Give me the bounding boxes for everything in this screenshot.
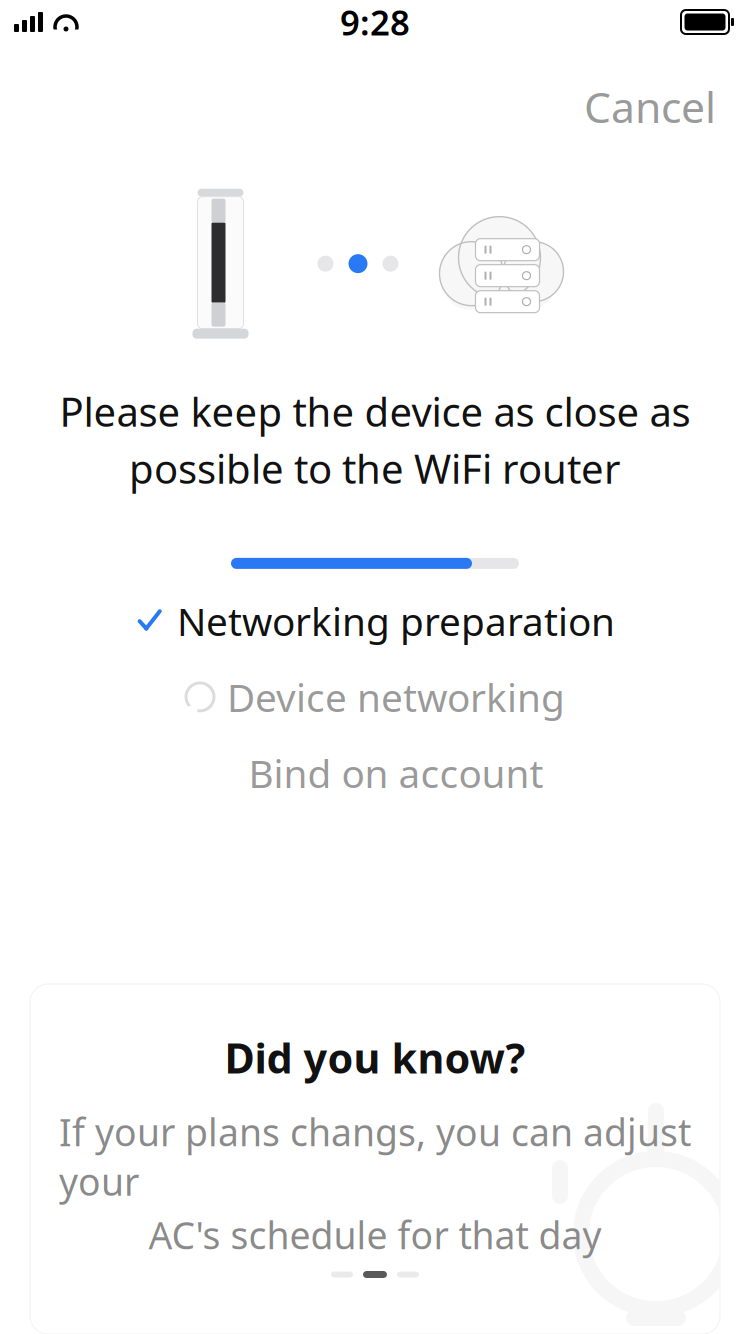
staticText: possible to the WiFi router bbox=[129, 442, 621, 495]
staticText: Did you know? bbox=[224, 1030, 525, 1085]
staticText: If your plans changs, you can adjust you… bbox=[59, 1107, 691, 1206]
staticText: Please keep the device as close as bbox=[59, 385, 690, 438]
button[interactable]: Cancel bbox=[566, 68, 734, 145]
staticText: Networking preparation bbox=[177, 595, 615, 646]
staticText: Device networking bbox=[227, 671, 565, 722]
staticText: Cancel bbox=[584, 78, 716, 135]
staticText: 9:28 bbox=[340, 0, 410, 45]
staticText: AC's schedule for that day bbox=[148, 1210, 601, 1260]
staticText: Bind on account bbox=[248, 747, 543, 798]
